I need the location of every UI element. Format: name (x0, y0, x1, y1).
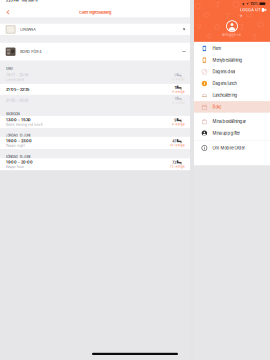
button[interactable]: Menybeställning (194, 54, 270, 66)
button[interactable]: Dagens deal (194, 66, 270, 78)
staticText: info@yh.se (223, 33, 241, 37)
button[interactable]: 19:00 - 23:00 (0, 137, 190, 149)
button[interactable]: 21:05 - 22:35 (0, 84, 190, 95)
button[interactable]: LOGGA UT (240, 7, 267, 13)
staticText: Menybeställning (212, 58, 242, 63)
staticText: 13:00 - 15:30 (6, 118, 31, 122)
button[interactable]: Hem (194, 43, 270, 54)
staticText: LINBANA (20, 27, 35, 32)
staticText: 0 (174, 73, 176, 77)
button[interactable]: Back (0, 8, 13, 16)
button[interactable]: Om Mobile Order (194, 142, 270, 154)
staticText: Thu Jun 11 (21, 0, 37, 2)
staticText: 11 lediga (172, 101, 184, 104)
staticText: IMORGON (6, 112, 20, 116)
staticText: 9 (174, 118, 176, 122)
button[interactable]: Lunchcatering (194, 89, 270, 101)
staticText: Cateringrestaurang (79, 10, 111, 15)
button[interactable]: Mina beställningar (194, 116, 270, 127)
staticText: 19:17 - 20:18 (6, 73, 28, 77)
button[interactable]: 21:05 - 23:30 (0, 95, 190, 106)
staticText: BORD FÖR 4 (20, 49, 41, 54)
staticText: Dagens lunch (212, 81, 236, 86)
staticText: Happy hour (6, 165, 24, 169)
staticText: 21:05 - 22:35 (6, 87, 29, 92)
staticText: 100% (250, 2, 258, 6)
staticText: 72 (172, 160, 176, 164)
staticText: 11 (174, 86, 176, 90)
staticText: Om Mobile Order (212, 145, 245, 150)
staticText: 11 (174, 97, 176, 101)
staticText: Happy night (6, 144, 25, 147)
staticText: SÖNDAG, 14 JUNI (6, 155, 31, 159)
staticText: Mina beställningar (212, 119, 246, 124)
staticText: 0 lediga (172, 78, 184, 81)
button[interactable]: Dagens lunch (194, 78, 270, 89)
staticText: 9 lediga (172, 123, 184, 126)
staticText: IDAG (6, 67, 13, 70)
staticText: 21:05 - 23:30 (6, 98, 28, 103)
staticText: 72 lediga (170, 165, 184, 168)
button[interactable]: 19:00 - 20:00 (0, 158, 190, 170)
staticText: 11 lediga (172, 90, 184, 93)
staticText: Boka (212, 104, 221, 109)
staticText: 19:00 - 23:00 (6, 139, 32, 143)
button[interactable]: BORD FÖR 4 (0, 43, 190, 61)
button[interactable]: Mina uppgifter (194, 127, 270, 139)
staticText: 47 lediga (170, 144, 184, 147)
button[interactable]: 13:00 - 15:30 (0, 116, 190, 128)
staticText: 3:23 PM (5, 0, 18, 2)
staticText: LOGGA UT (240, 8, 260, 12)
button[interactable]: LINBANA (0, 24, 190, 35)
staticText: Lunch bord (6, 78, 24, 81)
staticText: Mina uppgifter (212, 131, 240, 136)
staticText: Lunchcatering (212, 93, 237, 98)
staticText: Hem (212, 46, 221, 51)
staticText: LÖRDAG, 13 JUNI (6, 134, 31, 138)
staticText: 47 (172, 139, 176, 143)
staticText: Dagens deal (212, 69, 235, 74)
staticText: Gratis träning vid lunch (6, 123, 43, 126)
button[interactable]: Boka (194, 101, 270, 113)
button[interactable]: 19:17 - 20:18 (0, 70, 190, 84)
staticText: 19:00 - 20:00 (6, 160, 33, 164)
